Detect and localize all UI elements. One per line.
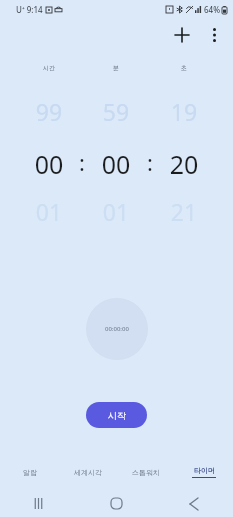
staticText: 시작 [108, 410, 126, 421]
staticText: U⁺ 9:14 [16, 4, 43, 15]
staticText: 세계시각 [74, 468, 102, 477]
staticText: 01 [24, 196, 74, 227]
staticText: 분 [96, 64, 136, 72]
staticText: 21 [159, 196, 209, 227]
button[interactable]: 알람 [0, 460, 59, 484]
staticText: 초 [164, 64, 204, 72]
staticText: 스톱워치 [132, 468, 160, 477]
staticText: 64% [204, 4, 220, 15]
button[interactable]: 스톱워치 [117, 460, 175, 484]
staticText: 알람 [23, 468, 37, 477]
button[interactable]: 타이머 [175, 460, 233, 484]
staticText: : [77, 147, 87, 177]
staticText: 타이머 [194, 466, 215, 475]
staticText: 99 [24, 96, 74, 127]
staticText: 19 [159, 96, 209, 127]
staticText: 01 [91, 196, 141, 227]
button[interactable]: 20 [159, 147, 209, 181]
button[interactable]: Add timer [165, 18, 199, 52]
button[interactable]: 00:00:00 [86, 298, 148, 360]
button[interactable]: Back [155, 490, 233, 517]
staticText: 00 [91, 147, 141, 181]
staticText: : [145, 147, 155, 177]
staticText: 00 [24, 147, 74, 181]
button[interactable]: Home [77, 490, 155, 517]
staticText: 00:00:00 [105, 325, 129, 333]
staticText: 시간 [29, 64, 69, 72]
staticText: 59 [91, 96, 141, 127]
button[interactable]: Recents [0, 490, 77, 517]
staticText: 20 [159, 147, 209, 181]
button[interactable]: 00 [91, 147, 141, 181]
button[interactable]: 시작 [86, 402, 147, 428]
button[interactable]: 00 [24, 147, 74, 181]
button[interactable]: 세계시각 [59, 460, 117, 484]
button[interactable]: More options [199, 20, 229, 50]
